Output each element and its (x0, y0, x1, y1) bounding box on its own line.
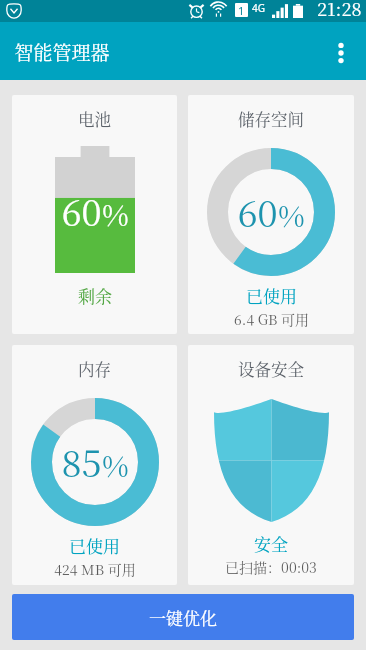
staticText: % (102, 193, 129, 235)
staticText: 安全 (254, 531, 288, 555)
staticText: 已扫描：00:03 (225, 557, 317, 577)
staticText: 智能管理器 (14, 38, 110, 65)
staticText: 电池 (78, 107, 111, 131)
button[interactable]: 储存空间 (188, 95, 354, 334)
staticText: 60 (237, 186, 278, 238)
staticText: 4G (252, 1, 265, 15)
staticText: 一键优化 (149, 605, 217, 629)
staticText: 已使用 (246, 283, 297, 307)
button[interactable]: More options (314, 27, 362, 75)
staticText: % (102, 444, 129, 486)
staticText: 剩余 (78, 283, 112, 307)
staticText: 6.4 GB 可用 (234, 309, 309, 329)
button[interactable]: 设备安全 (188, 345, 354, 585)
staticText: 21:28 (317, 0, 362, 17)
staticText: 储存空间 (238, 107, 304, 131)
staticText: 内存 (78, 357, 111, 381)
staticText: 60 (61, 185, 102, 237)
button[interactable]: 内存 (12, 345, 177, 585)
button[interactable]: 电池 (12, 95, 177, 334)
staticText: % (278, 194, 305, 236)
staticText: 85 (61, 436, 102, 488)
staticText: 已使用 (69, 533, 120, 557)
staticText: 424 MB 可用 (54, 559, 136, 579)
staticText: 设备安全 (238, 357, 304, 381)
staticText: 1 (238, 3, 245, 17)
button[interactable]: 一键优化 (12, 594, 354, 640)
